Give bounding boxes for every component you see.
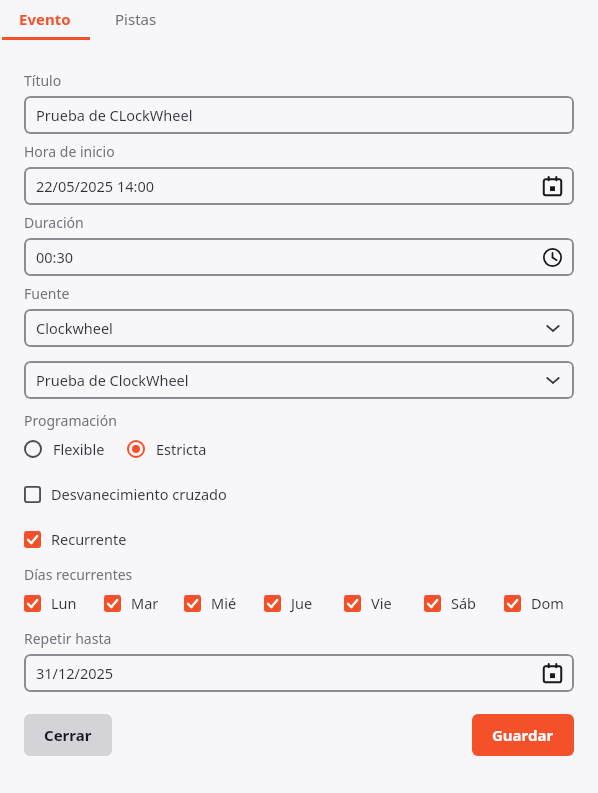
staticText: Recurrente bbox=[51, 529, 127, 549]
staticText: Programación bbox=[24, 411, 117, 430]
staticText: Cerrar bbox=[44, 725, 92, 745]
staticText: Días recurrentes bbox=[24, 565, 133, 584]
button[interactable]: Jue bbox=[264, 593, 334, 613]
button[interactable]: Sáb bbox=[424, 593, 494, 613]
staticText: 22/05/2025 14:00 bbox=[36, 176, 543, 196]
button[interactable]: 31/12/2025 bbox=[24, 654, 574, 692]
button[interactable]: Mié bbox=[184, 593, 254, 613]
button[interactable]: Desvanecimiento cruzado bbox=[24, 484, 227, 504]
button[interactable]: Cerrar bbox=[24, 714, 112, 756]
staticText: 00:30 bbox=[36, 247, 543, 267]
button[interactable]: Vie bbox=[344, 593, 414, 613]
button[interactable]: Recurrente bbox=[24, 529, 127, 549]
button[interactable]: Estricta bbox=[127, 439, 207, 459]
staticText: Clockwheel bbox=[36, 318, 544, 338]
button[interactable]: 00:30 bbox=[24, 238, 574, 276]
button[interactable]: Pistas bbox=[90, 0, 182, 37]
staticText: Evento bbox=[19, 9, 71, 29]
button[interactable]: Prueba de ClockWheel bbox=[24, 361, 574, 399]
button[interactable]: Prueba de CLockWheel bbox=[24, 96, 574, 134]
staticText: Desvanecimiento cruzado bbox=[51, 484, 227, 504]
staticText: 31/12/2025 bbox=[36, 663, 543, 683]
other: Select time bbox=[543, 248, 562, 267]
staticText: Mar bbox=[131, 593, 159, 613]
staticText: Fuente bbox=[24, 284, 70, 303]
staticText: Lun bbox=[51, 593, 77, 613]
staticText: Guardar bbox=[492, 725, 554, 745]
staticText: Título bbox=[24, 71, 62, 90]
other: Select date bbox=[543, 664, 562, 683]
button[interactable]: Clockwheel bbox=[24, 309, 574, 347]
button[interactable]: Lun bbox=[24, 593, 94, 613]
staticText: Jue bbox=[291, 593, 313, 613]
staticText: Vie bbox=[371, 593, 392, 613]
staticText: Dom bbox=[531, 593, 564, 613]
button[interactable]: Mar bbox=[104, 593, 174, 613]
staticText: Hora de inicio bbox=[24, 142, 115, 161]
staticText: Prueba de ClockWheel bbox=[36, 370, 544, 390]
button[interactable]: Dom bbox=[504, 593, 574, 613]
staticText: Repetir hasta bbox=[24, 629, 112, 648]
other: Select date bbox=[543, 177, 562, 196]
staticText: Duración bbox=[24, 213, 84, 232]
staticText: Mié bbox=[211, 593, 237, 613]
staticText: Prueba de CLockWheel bbox=[36, 105, 562, 125]
button[interactable]: 22/05/2025 14:00 bbox=[24, 167, 574, 205]
button[interactable]: Evento bbox=[0, 0, 90, 37]
other: Expand bbox=[544, 319, 562, 337]
button[interactable]: Flexible bbox=[24, 439, 105, 459]
other: Expand bbox=[544, 371, 562, 389]
button[interactable]: Guardar bbox=[472, 714, 574, 756]
staticText: Pistas bbox=[115, 9, 157, 29]
staticText: Flexible bbox=[53, 439, 105, 459]
staticText: Estricta bbox=[156, 439, 207, 459]
staticText: Sáb bbox=[451, 593, 477, 613]
